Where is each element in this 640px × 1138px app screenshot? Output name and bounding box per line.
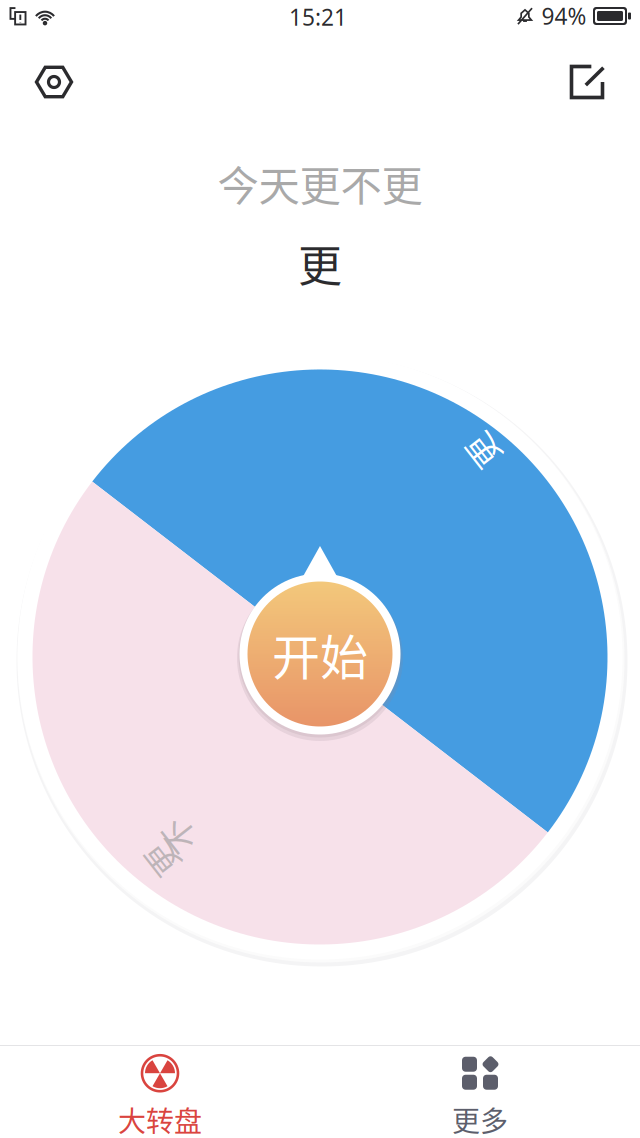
button[interactable]: 大转盘 bbox=[0, 1046, 320, 1138]
staticText: 更 bbox=[144, 836, 177, 884]
button[interactable]: Compose bbox=[555, 50, 619, 114]
button[interactable]: Settings bbox=[22, 50, 86, 114]
staticText: 94% bbox=[541, 1, 586, 31]
staticText: 不 bbox=[161, 813, 194, 861]
staticText: 更多 bbox=[452, 1099, 508, 1138]
staticText: 今天更不更 bbox=[217, 153, 422, 213]
staticText: 15:21 bbox=[289, 2, 347, 32]
button[interactable]: 开始 bbox=[220, 552, 420, 762]
staticText: 更 bbox=[465, 428, 498, 476]
button[interactable]: 更多 bbox=[320, 1046, 640, 1138]
staticText: 大转盘 bbox=[118, 1099, 202, 1138]
staticText: 开始 bbox=[272, 619, 368, 689]
staticText: 更 bbox=[298, 231, 342, 295]
